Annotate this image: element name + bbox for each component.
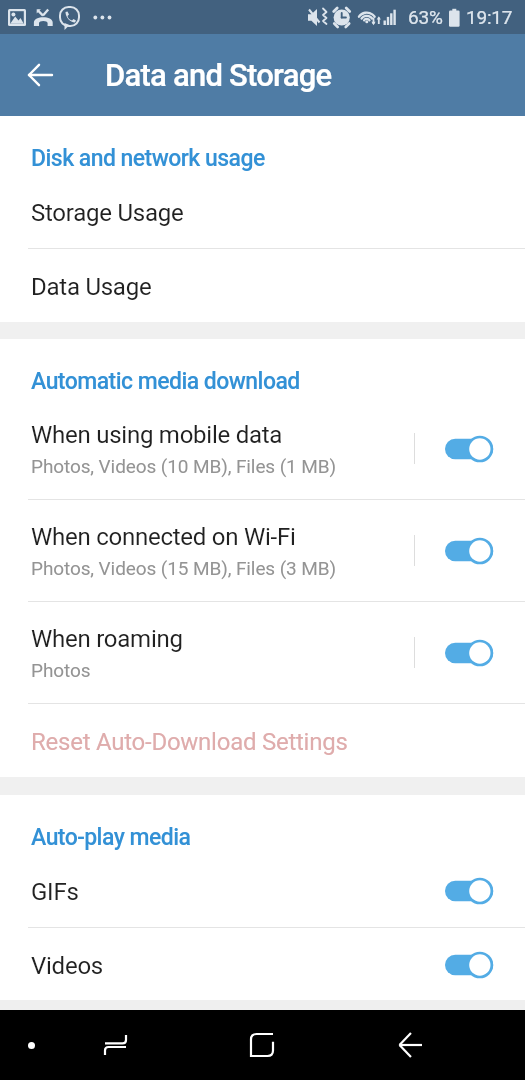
staticText: When roaming bbox=[31, 625, 183, 653]
staticText: Data Usage bbox=[31, 273, 152, 301]
staticText: GIFs bbox=[31, 878, 79, 906]
button[interactable]: Back bbox=[16, 51, 64, 99]
staticText: Automatic media download bbox=[31, 368, 300, 395]
button[interactable]: Storage Usage bbox=[0, 175, 525, 248]
button[interactable]: Reset Auto-Download Settings bbox=[0, 704, 525, 777]
staticText: Photos, Videos (15 MB), Files (3 MB) bbox=[31, 557, 337, 579]
staticText: 19:17 bbox=[466, 6, 513, 28]
button[interactable]: When connected on Wi-Fi bbox=[0, 500, 525, 601]
staticText: Photos bbox=[31, 659, 91, 681]
button[interactable]: Videos bbox=[0, 928, 525, 1001]
button[interactable]: Menu bbox=[0, 1010, 63, 1080]
button[interactable]: GIFs bbox=[0, 854, 525, 927]
staticText: When connected on Wi-Fi bbox=[31, 523, 296, 551]
button[interactable]: Recent apps bbox=[75, 1010, 155, 1080]
staticText: Data and Storage bbox=[105, 57, 332, 93]
button[interactable]: Home bbox=[222, 1010, 302, 1080]
staticText: Photos, Videos (10 MB), Files (1 MB) bbox=[31, 455, 337, 477]
staticText: When using mobile data bbox=[31, 421, 283, 449]
staticText: Videos bbox=[31, 952, 103, 980]
staticText: Storage Usage bbox=[31, 199, 184, 227]
button[interactable]: Back bbox=[370, 1010, 450, 1080]
button[interactable]: When using mobile data bbox=[0, 398, 525, 499]
staticText: Reset Auto-Download Settings bbox=[31, 728, 348, 756]
staticText: Auto-play media bbox=[31, 824, 191, 851]
staticText: 63% bbox=[408, 6, 443, 28]
button[interactable]: Data Usage bbox=[0, 249, 525, 322]
staticText: Disk and network usage bbox=[31, 145, 265, 172]
button[interactable]: When roaming bbox=[0, 602, 525, 703]
